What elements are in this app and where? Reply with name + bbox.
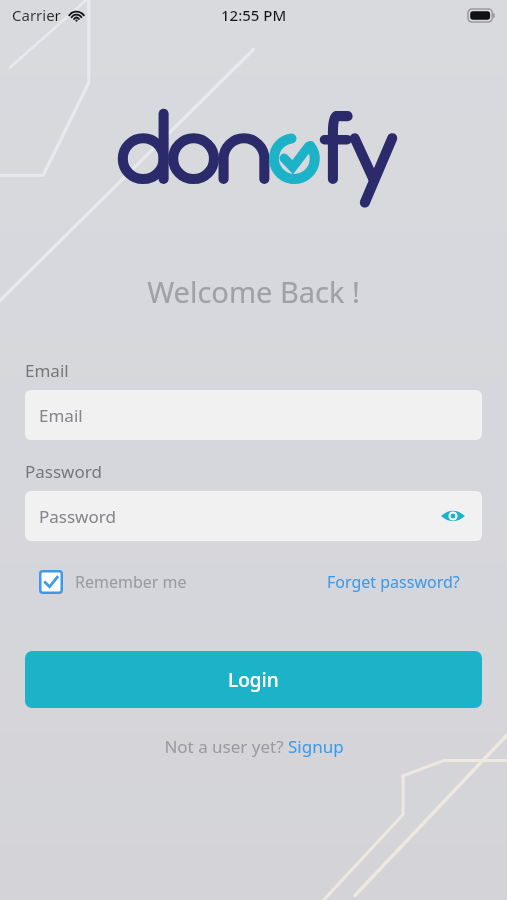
button[interactable]: Remember me [25,566,193,598]
button[interactable]: Not a user yet? Signup [160,731,348,762]
staticText: Email [25,359,69,382]
button[interactable]: Email [25,390,482,440]
staticText: 12:55 PM [221,5,287,25]
staticText: Password [25,460,102,483]
staticText: Welcome Back ! [0,272,507,311]
staticText: Login [228,667,279,693]
staticText: Password [39,505,116,528]
staticText: Forget password? [327,571,460,593]
staticText: Remember me [75,571,187,593]
staticText: Not a user yet? Signup [164,735,344,758]
button[interactable]: Forget password? [321,567,466,597]
staticText: Email [39,404,83,427]
button[interactable]: Login [25,651,482,708]
button[interactable]: Password [25,491,482,541]
button[interactable]: Show password [438,501,468,531]
staticText: Carrier [12,5,61,25]
